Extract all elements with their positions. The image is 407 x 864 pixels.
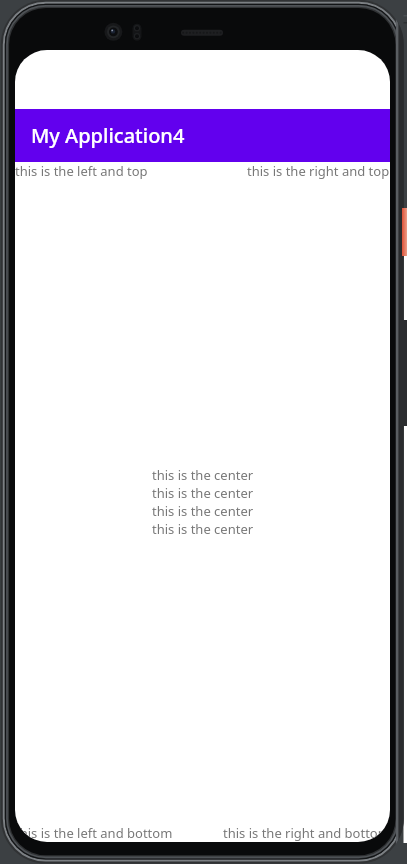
staticText: this is the left and top bbox=[15, 162, 148, 180]
staticText: this is the center this is the center th… bbox=[152, 466, 254, 538]
staticText: this is the right and top bbox=[247, 162, 390, 180]
staticText: My Application4 bbox=[31, 122, 185, 149]
staticText: this is the right and bottom bbox=[223, 824, 390, 842]
staticText: this is the left and bottom bbox=[15, 824, 173, 842]
button[interactable]: My Application4 bbox=[15, 109, 390, 162]
